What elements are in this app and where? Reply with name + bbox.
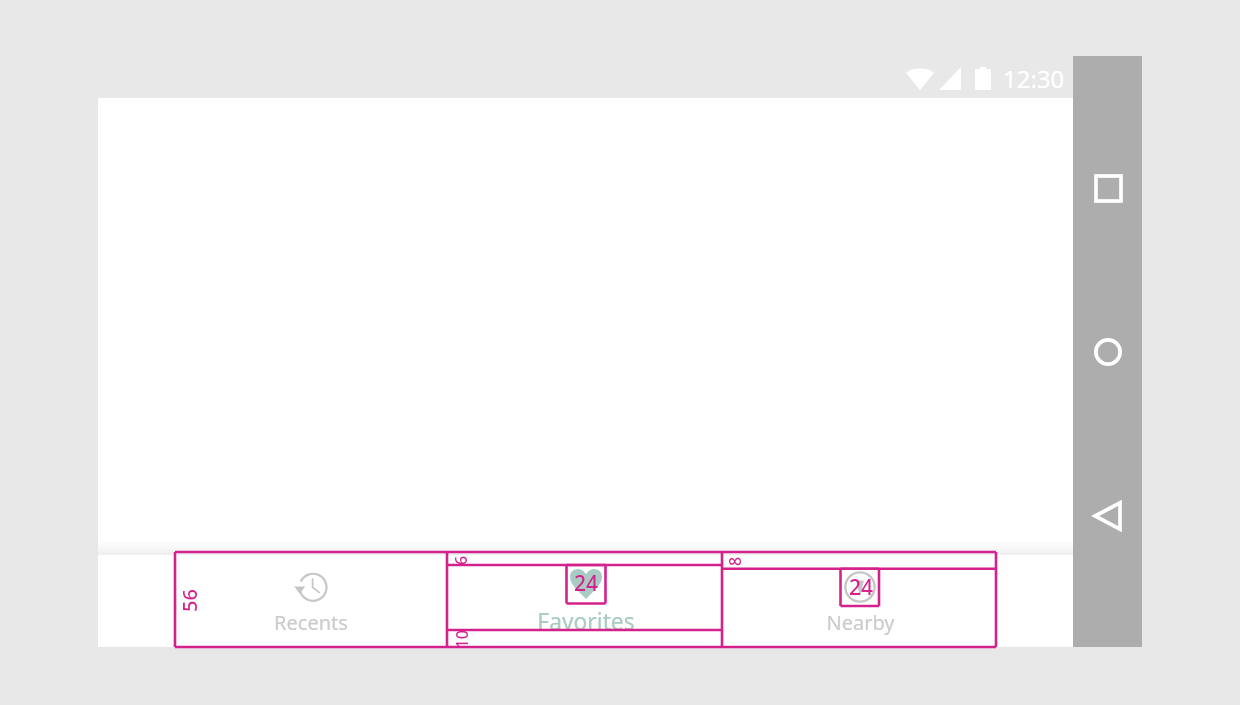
- staticText: Favorites: [537, 606, 635, 637]
- button[interactable]: Back: [1086, 494, 1130, 538]
- staticText: 10: [450, 629, 472, 648]
- staticText: 8: [724, 556, 746, 566]
- staticText: 12:30: [1003, 62, 1065, 95]
- staticText: 24: [849, 573, 874, 602]
- staticText: Nearby: [826, 609, 895, 636]
- staticText: 56: [176, 589, 203, 612]
- staticText: Recents: [274, 609, 348, 636]
- button[interactable]: Recent apps: [1086, 166, 1130, 210]
- button[interactable]: Recents: [175, 552, 447, 647]
- button[interactable]: Home: [1086, 330, 1130, 374]
- button[interactable]: Favorites: [447, 552, 722, 647]
- staticText: 24: [574, 569, 599, 598]
- button[interactable]: Nearby: [722, 552, 996, 647]
- staticText: 6: [450, 555, 472, 565]
